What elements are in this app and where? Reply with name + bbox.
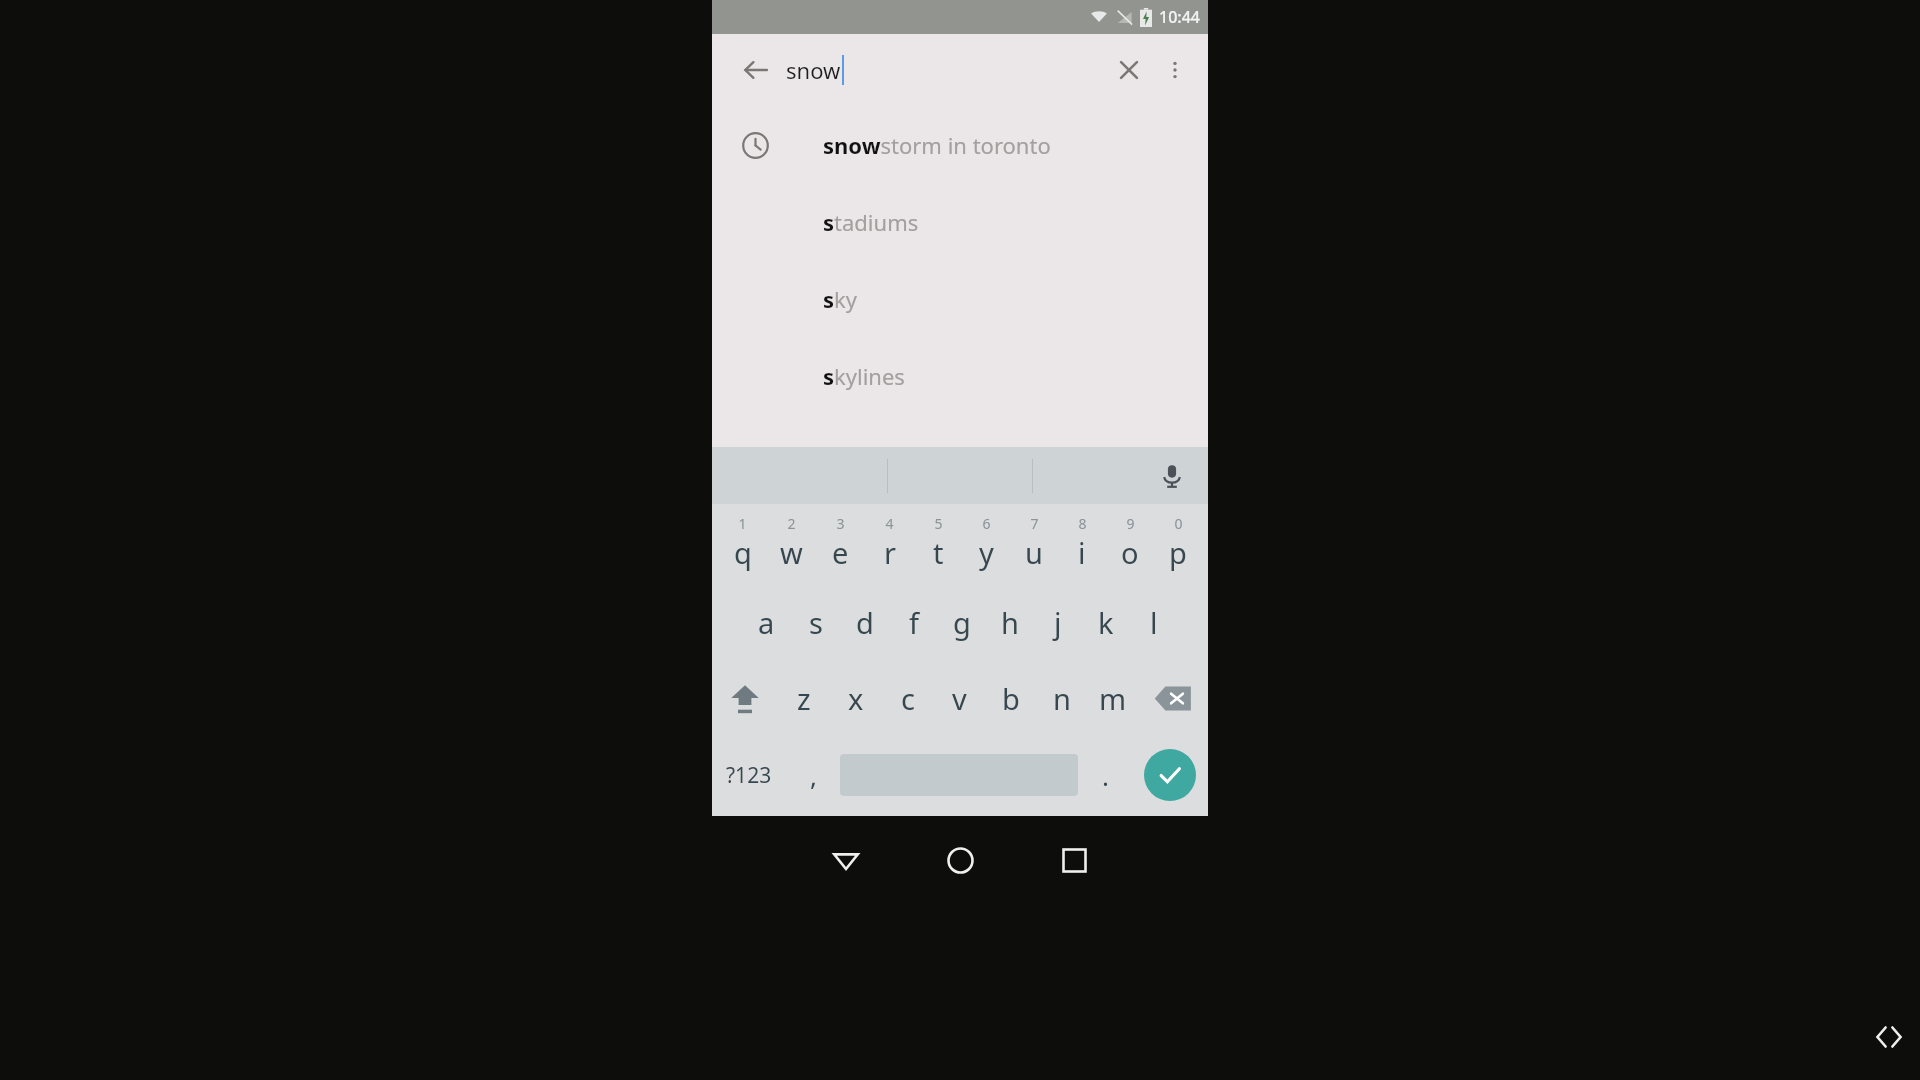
button[interactable]: 3	[816, 508, 865, 584]
button[interactable]: g	[938, 584, 986, 660]
staticText: snow	[786, 55, 841, 85]
staticText: b	[1002, 679, 1020, 718]
staticText: sky	[823, 284, 858, 314]
button[interactable]: 8	[1058, 508, 1106, 584]
staticText: 7	[1030, 514, 1039, 533]
staticText: skylines	[823, 361, 905, 391]
staticText: h	[1001, 603, 1019, 642]
button[interactable]: ?123	[712, 736, 786, 814]
staticText: 10:44	[1159, 6, 1200, 28]
staticText: n	[1053, 679, 1071, 718]
staticText: e	[832, 533, 849, 572]
staticText: 2	[787, 514, 796, 533]
staticText: 9	[1126, 514, 1135, 533]
staticText: ?123	[726, 761, 772, 790]
staticText: 4	[885, 514, 894, 533]
button[interactable]: 6	[962, 508, 1010, 584]
staticText: l	[1150, 603, 1158, 642]
staticText: .	[1102, 758, 1109, 793]
button[interactable]: v	[934, 660, 985, 736]
button[interactable]: Home	[932, 832, 988, 888]
button[interactable]: Back	[818, 832, 874, 888]
staticText: 3	[836, 514, 845, 533]
button[interactable]: skylines	[712, 337, 1208, 414]
button[interactable]: 7	[1010, 508, 1058, 584]
button[interactable]: x	[830, 660, 882, 736]
staticText: q	[734, 533, 752, 572]
staticText: t	[933, 533, 944, 572]
staticText: i	[1078, 533, 1086, 572]
button[interactable]: a	[742, 584, 791, 660]
staticText: 8	[1078, 514, 1087, 533]
staticText: 0	[1174, 514, 1183, 533]
staticText: snowstorm in toronto	[823, 130, 1051, 160]
button[interactable]: 0	[1154, 508, 1202, 584]
staticText: u	[1025, 533, 1043, 572]
staticText: ,	[810, 758, 817, 793]
button[interactable]: Back	[734, 48, 778, 92]
button[interactable]: 1	[718, 508, 767, 584]
button[interactable]: .	[1078, 736, 1132, 814]
staticText: y	[979, 533, 994, 572]
button[interactable]: ,	[786, 736, 840, 814]
staticText: o	[1121, 533, 1139, 572]
staticText: 5	[934, 514, 943, 533]
staticText: 1	[738, 514, 747, 533]
button[interactable]: Search	[1144, 749, 1196, 801]
staticText: w	[780, 533, 803, 572]
button[interactable]: Recents	[1046, 832, 1102, 888]
button[interactable]: Voice input	[1150, 454, 1194, 498]
staticText: stadiums	[823, 207, 919, 237]
staticText: s	[809, 603, 823, 642]
staticText: p	[1169, 533, 1187, 572]
button[interactable]: z	[778, 660, 830, 736]
staticText: g	[953, 603, 971, 642]
button[interactable]: Shift	[712, 660, 778, 736]
button[interactable]: c	[882, 660, 934, 736]
button[interactable]: 4	[865, 508, 914, 584]
button[interactable]: stadiums	[712, 183, 1208, 260]
button[interactable]: 9	[1106, 508, 1154, 584]
button[interactable]: 2	[767, 508, 816, 584]
button[interactable]: Clear	[1106, 47, 1152, 93]
button[interactable]: d	[840, 584, 889, 660]
staticText: a	[758, 603, 775, 642]
staticText: c	[901, 679, 915, 718]
staticText: x	[848, 679, 864, 718]
button[interactable]: snowstorm in toronto	[712, 106, 1208, 183]
staticText: d	[856, 603, 874, 642]
button[interactable]: k	[1082, 584, 1130, 660]
button[interactable]: j	[1034, 584, 1082, 660]
button[interactable]: Backspace	[1138, 660, 1208, 736]
button[interactable]: n	[1036, 660, 1087, 736]
staticText: k	[1098, 603, 1114, 642]
button[interactable]: 5	[914, 508, 962, 584]
button[interactable]: More options	[1152, 47, 1198, 93]
button[interactable]: sky	[712, 260, 1208, 337]
button[interactable]: h	[986, 584, 1034, 660]
staticText: m	[1099, 679, 1127, 718]
staticText: v	[952, 679, 967, 718]
button[interactable]: s	[791, 584, 840, 660]
staticText: r	[884, 533, 896, 572]
staticText: 6	[982, 514, 991, 533]
button[interactable]: b	[985, 660, 1036, 736]
button[interactable]: l	[1130, 584, 1178, 660]
button[interactable]: f	[889, 584, 938, 660]
button[interactable]: m	[1087, 660, 1138, 736]
staticText: j	[1054, 603, 1062, 642]
staticText: f	[909, 603, 919, 642]
staticText: z	[797, 679, 811, 718]
